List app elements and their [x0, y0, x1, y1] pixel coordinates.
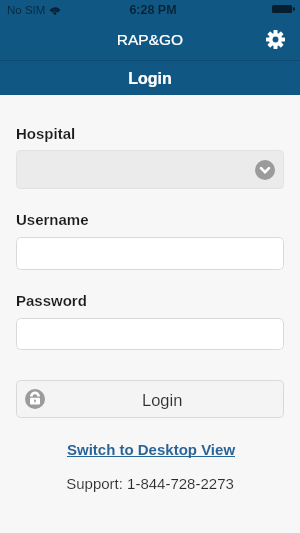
button[interactable]: Text input	[16, 237, 284, 270]
button[interactable]: Login	[16, 380, 284, 418]
staticText: Login	[142, 391, 183, 409]
staticText: Password	[16, 292, 87, 309]
staticText: RAP&GO	[0, 31, 300, 48]
staticText: Support: 1-844-728-2273	[0, 475, 300, 492]
button[interactable]: Text input	[16, 318, 284, 350]
staticText: Username	[16, 211, 89, 228]
button[interactable]: Switch to Desktop View	[61, 441, 241, 461]
button[interactable]: Select hospital	[16, 150, 284, 189]
staticText: Hospital	[16, 125, 76, 142]
button[interactable]: Settings	[266, 30, 285, 49]
staticText: Login	[0, 70, 300, 88]
staticText: No SIM	[7, 4, 46, 17]
staticText: Switch to Desktop View	[61, 441, 241, 458]
staticText: 6:28 PM	[3, 3, 300, 17]
